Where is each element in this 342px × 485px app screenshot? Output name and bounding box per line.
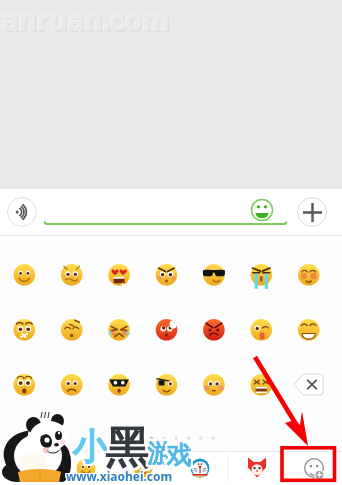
staticText: 黑 (107, 422, 151, 477)
staticText: 小 (73, 422, 109, 467)
staticText: www.xiaohei.com (66, 468, 173, 484)
button[interactable]: More options (297, 197, 327, 227)
staticText: 黑 (105, 423, 149, 478)
staticText: 戏 (168, 439, 193, 470)
staticText: anruan.com (3, 2, 171, 40)
button[interactable]: Backspace (294, 374, 323, 395)
staticText: 小 (71, 423, 107, 468)
staticText: 游 (145, 439, 170, 470)
staticText: 小 (72, 424, 108, 469)
staticText: 戏 (165, 441, 190, 472)
staticText: 黑 (103, 419, 147, 474)
staticText: 黑 (107, 420, 151, 475)
button[interactable]: Sticker pack 5 (228, 451, 285, 485)
staticText: 戏 (164, 440, 189, 471)
staticText: 黑 (106, 420, 150, 475)
staticText: 戏 (167, 439, 192, 470)
staticText: 游 (146, 440, 171, 471)
staticText: 黑 (103, 420, 147, 475)
staticText: 戏 (165, 440, 190, 471)
staticText: 游 (149, 438, 174, 469)
staticText: 小 (73, 424, 109, 469)
staticText: 游 (149, 439, 174, 470)
staticText: 小 (71, 424, 107, 469)
staticText: 戏 (164, 438, 189, 469)
staticText: www.xiaohei.com (67, 468, 174, 484)
staticText: 戏 (164, 439, 189, 470)
staticText: 戏 (168, 442, 193, 473)
staticText: 小 (70, 426, 106, 471)
staticText: 戏 (167, 442, 192, 473)
staticText: 小 (74, 425, 110, 470)
staticText: 游 (147, 440, 172, 471)
staticText: 小 (70, 424, 106, 469)
staticText: 游 (149, 440, 174, 471)
staticText: 游 (148, 439, 173, 470)
staticText: www.xiaohei.com (66, 469, 173, 485)
staticText: anruan.com (1, 0, 169, 38)
button[interactable]: Add sticker (285, 451, 342, 485)
staticText: 小 (72, 423, 108, 468)
staticText: 戏 (168, 440, 193, 471)
staticText: 黑 (105, 422, 149, 477)
staticText: www.xiaohei.com (65, 469, 172, 485)
staticText: 戏 (166, 439, 191, 470)
staticText: 黑 (104, 423, 148, 478)
staticText: 小 (70, 425, 106, 470)
staticText: 黑 (104, 422, 148, 477)
staticText: 小 (73, 425, 109, 470)
staticText: 戏 (166, 438, 191, 469)
staticText: 戏 (166, 441, 191, 472)
staticText: 戏 (167, 441, 192, 472)
staticText: 黑 (103, 422, 147, 477)
staticText: 游 (145, 436, 170, 467)
staticText: 小 (71, 422, 107, 467)
staticText: www.xiaohei.com (67, 469, 174, 485)
staticText: www.xiaohei.com (67, 467, 174, 483)
staticText: 游 (148, 440, 173, 471)
staticText: 戏 (166, 442, 191, 473)
staticText: 戏 (167, 438, 192, 469)
staticText: 黑 (103, 423, 147, 478)
button[interactable]: Sticker pack 4 (171, 451, 228, 485)
staticText: 黑 (107, 421, 151, 476)
staticText: 黑 (106, 423, 150, 478)
staticText: 黑 (107, 423, 151, 478)
staticText: 戏 (165, 442, 190, 473)
staticText: 游 (146, 436, 171, 467)
staticText: 小 (74, 424, 110, 469)
staticText: 小 (71, 425, 107, 470)
staticText: 游 (145, 440, 170, 471)
staticText: 小 (70, 422, 106, 467)
staticText: 小 (73, 423, 109, 468)
staticText: 戏 (165, 438, 190, 469)
button[interactable]: Voice message (7, 197, 37, 227)
staticText: 黑 (103, 421, 147, 476)
staticText: 戏 (165, 439, 190, 470)
button[interactable]: Sticker pack 3 (114, 451, 171, 485)
staticText: 小 (72, 426, 108, 471)
staticText: 游 (148, 436, 173, 467)
button[interactable]: Sticker pack 2 (57, 451, 114, 485)
staticText: 小 (74, 423, 110, 468)
staticText: 戏 (168, 438, 193, 469)
staticText: 游 (145, 437, 170, 468)
button[interactable]: Emoji (250, 198, 274, 222)
staticText: 戏 (168, 441, 193, 472)
staticText: 黑 (104, 419, 148, 474)
staticText: 黑 (104, 420, 148, 475)
staticText: 游 (146, 439, 171, 470)
staticText: anruan.com (2, 1, 170, 39)
staticText: 黑 (106, 422, 150, 477)
staticText: 小 (72, 422, 108, 467)
staticText: 游 (147, 437, 172, 468)
staticText: 戏 (167, 440, 192, 471)
staticText: www.xiaohei.com (66, 467, 173, 483)
staticText: 黑 (106, 419, 150, 474)
staticText: www.xiaohei.com (65, 467, 172, 483)
staticText: 黑 (105, 420, 149, 475)
button[interactable]: Sticker pack 1 (0, 451, 57, 485)
staticText: 游 (147, 436, 172, 467)
staticText: 黑 (105, 419, 149, 474)
staticText: www.xiaohei.com (65, 468, 172, 484)
